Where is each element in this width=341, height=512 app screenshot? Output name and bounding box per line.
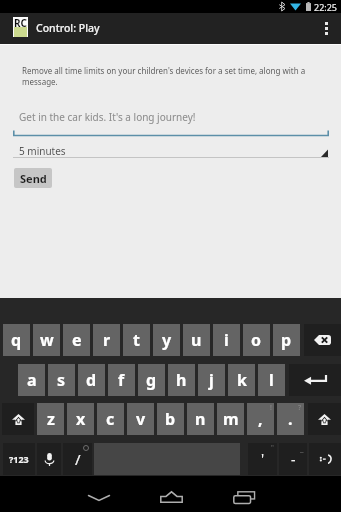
staticText: q <box>11 329 22 351</box>
button[interactable]: Apostrophe <box>248 443 277 475</box>
staticText: RC <box>14 16 27 30</box>
staticText: f <box>118 369 125 391</box>
button[interactable]: . <box>277 403 304 435</box>
button[interactable]: Shift <box>308 403 341 435</box>
button[interactable]: z <box>37 403 64 435</box>
button[interactable]: g <box>138 364 165 396</box>
staticText: a <box>27 369 37 391</box>
button[interactable]: e <box>63 324 90 356</box>
button[interactable]: Get in the car kids. It's a long journey… <box>13 108 329 138</box>
button[interactable]: Emoji <box>309 443 341 475</box>
button[interactable]: i <box>213 324 240 356</box>
staticText: e <box>72 329 82 351</box>
button[interactable]: l <box>258 364 285 396</box>
button[interactable]: Home <box>150 482 192 512</box>
button[interactable]: q <box>3 324 30 356</box>
staticText: , <box>258 408 263 430</box>
button[interactable]: Delete <box>304 324 341 356</box>
staticText: n <box>195 408 206 430</box>
staticText: x <box>76 408 86 430</box>
staticText: c <box>106 408 115 430</box>
staticText: 22:25 <box>314 1 338 13</box>
button[interactable]: u <box>183 324 210 356</box>
staticText: z <box>47 408 55 430</box>
staticText: y <box>162 329 172 351</box>
staticText: s <box>57 369 66 391</box>
button[interactable]: Voice input <box>37 443 61 475</box>
staticText: _ <box>300 442 304 453</box>
staticText: p <box>281 329 292 351</box>
staticText: ? <box>298 403 302 413</box>
staticText: / <box>75 449 81 469</box>
button[interactable]: j <box>198 364 225 396</box>
staticText: 5 minutes <box>19 144 66 158</box>
staticText: . <box>288 408 293 430</box>
button[interactable]: t <box>123 324 150 356</box>
staticText: m <box>223 408 239 430</box>
staticText: g <box>146 369 157 391</box>
button[interactable]: f <box>108 364 135 396</box>
button[interactable]: Dash <box>279 443 307 475</box>
staticText: i <box>224 329 229 351</box>
button[interactable]: 5 minutes <box>13 142 329 159</box>
staticText: " <box>271 443 274 453</box>
staticText: k <box>237 369 247 391</box>
staticText: Remove all time limits on your children'… <box>22 65 332 87</box>
button[interactable]: c <box>97 403 124 435</box>
button[interactable]: h <box>168 364 195 396</box>
button[interactable]: More options <box>311 13 341 44</box>
staticText: r <box>103 329 111 351</box>
button[interactable]: s <box>48 364 75 396</box>
button[interactable]: p <box>273 324 300 356</box>
button[interactable]: y <box>153 324 180 356</box>
staticText: t <box>133 329 140 351</box>
staticText: d <box>86 369 97 391</box>
button[interactable]: Recent apps <box>223 482 265 512</box>
staticText: ! <box>270 403 272 413</box>
staticText: Get in the car kids. It's a long journey… <box>19 110 196 124</box>
staticText: l <box>269 369 274 391</box>
staticText: ?123 <box>9 453 29 465</box>
button[interactable]: Slash <box>63 443 92 475</box>
staticText: j <box>209 369 214 391</box>
button[interactable]: Shift <box>2 403 34 435</box>
staticText: Send <box>20 171 47 186</box>
button[interactable]: a <box>18 364 45 396</box>
button[interactable]: o <box>243 324 270 356</box>
button[interactable]: n <box>187 403 214 435</box>
staticText: u <box>191 329 202 351</box>
staticText: w <box>40 329 54 351</box>
staticText: b <box>165 408 176 430</box>
button[interactable]: , <box>247 403 274 435</box>
staticText: v <box>136 408 146 430</box>
staticText: o <box>251 329 262 351</box>
button[interactable]: b <box>157 403 184 435</box>
button[interactable]: Back <box>78 483 120 512</box>
staticText: ' <box>261 449 265 468</box>
button[interactable]: r <box>93 324 120 356</box>
staticText: h <box>176 369 187 391</box>
button[interactable]: k <box>228 364 255 396</box>
staticText: - <box>291 450 296 469</box>
button[interactable]: v <box>127 403 154 435</box>
button[interactable]: Send <box>14 168 52 188</box>
button[interactable]: d <box>78 364 105 396</box>
staticText: Control: Play <box>36 21 100 35</box>
button[interactable]: x <box>67 403 94 435</box>
button[interactable]: Symbols <box>3 443 35 475</box>
button[interactable]: Enter <box>289 364 341 396</box>
button[interactable]: m <box>217 403 244 435</box>
button[interactable]: w <box>33 324 60 356</box>
